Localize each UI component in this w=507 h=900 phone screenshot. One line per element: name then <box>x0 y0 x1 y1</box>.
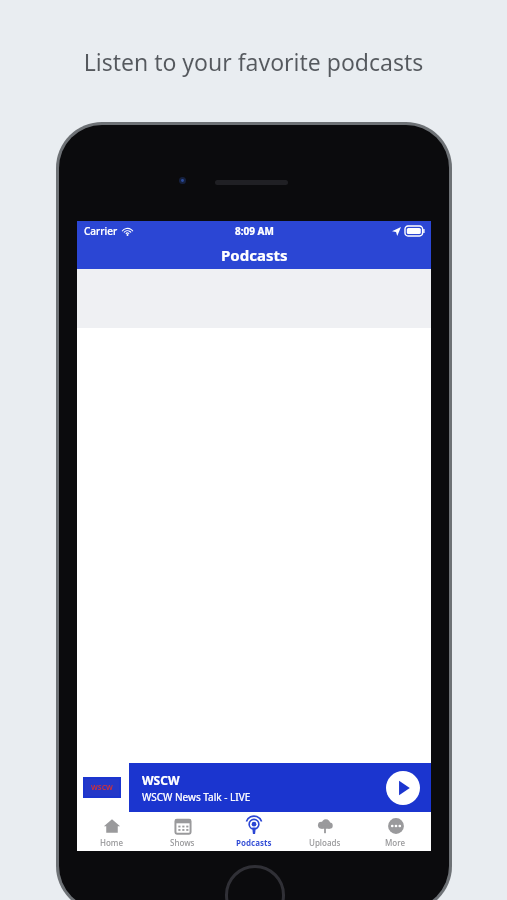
staticText: Podcasts <box>236 837 272 848</box>
staticText: Home <box>100 837 124 848</box>
button[interactable]: WSCW <box>129 763 431 812</box>
staticText: More <box>385 837 406 848</box>
button[interactable]: Play <box>386 771 420 805</box>
staticText: Listen to your favorite podcasts <box>0 46 507 77</box>
staticText: Podcasts <box>221 245 288 265</box>
staticText: 8:09 AM <box>235 224 274 238</box>
button[interactable]: Shows <box>147 814 218 851</box>
staticText: WSCW News Talk - LIVE <box>142 790 251 804</box>
staticText: Carrier <box>84 224 118 238</box>
button[interactable]: Podcasts <box>218 814 289 851</box>
button[interactable]: More <box>360 814 431 851</box>
button[interactable]: Uploads <box>289 814 360 851</box>
staticText: WSCW <box>142 772 180 788</box>
staticText: Uploads <box>309 837 341 848</box>
staticText: WSCW <box>91 783 113 793</box>
staticText: Shows <box>170 837 195 848</box>
button[interactable]: Home <box>77 814 147 851</box>
